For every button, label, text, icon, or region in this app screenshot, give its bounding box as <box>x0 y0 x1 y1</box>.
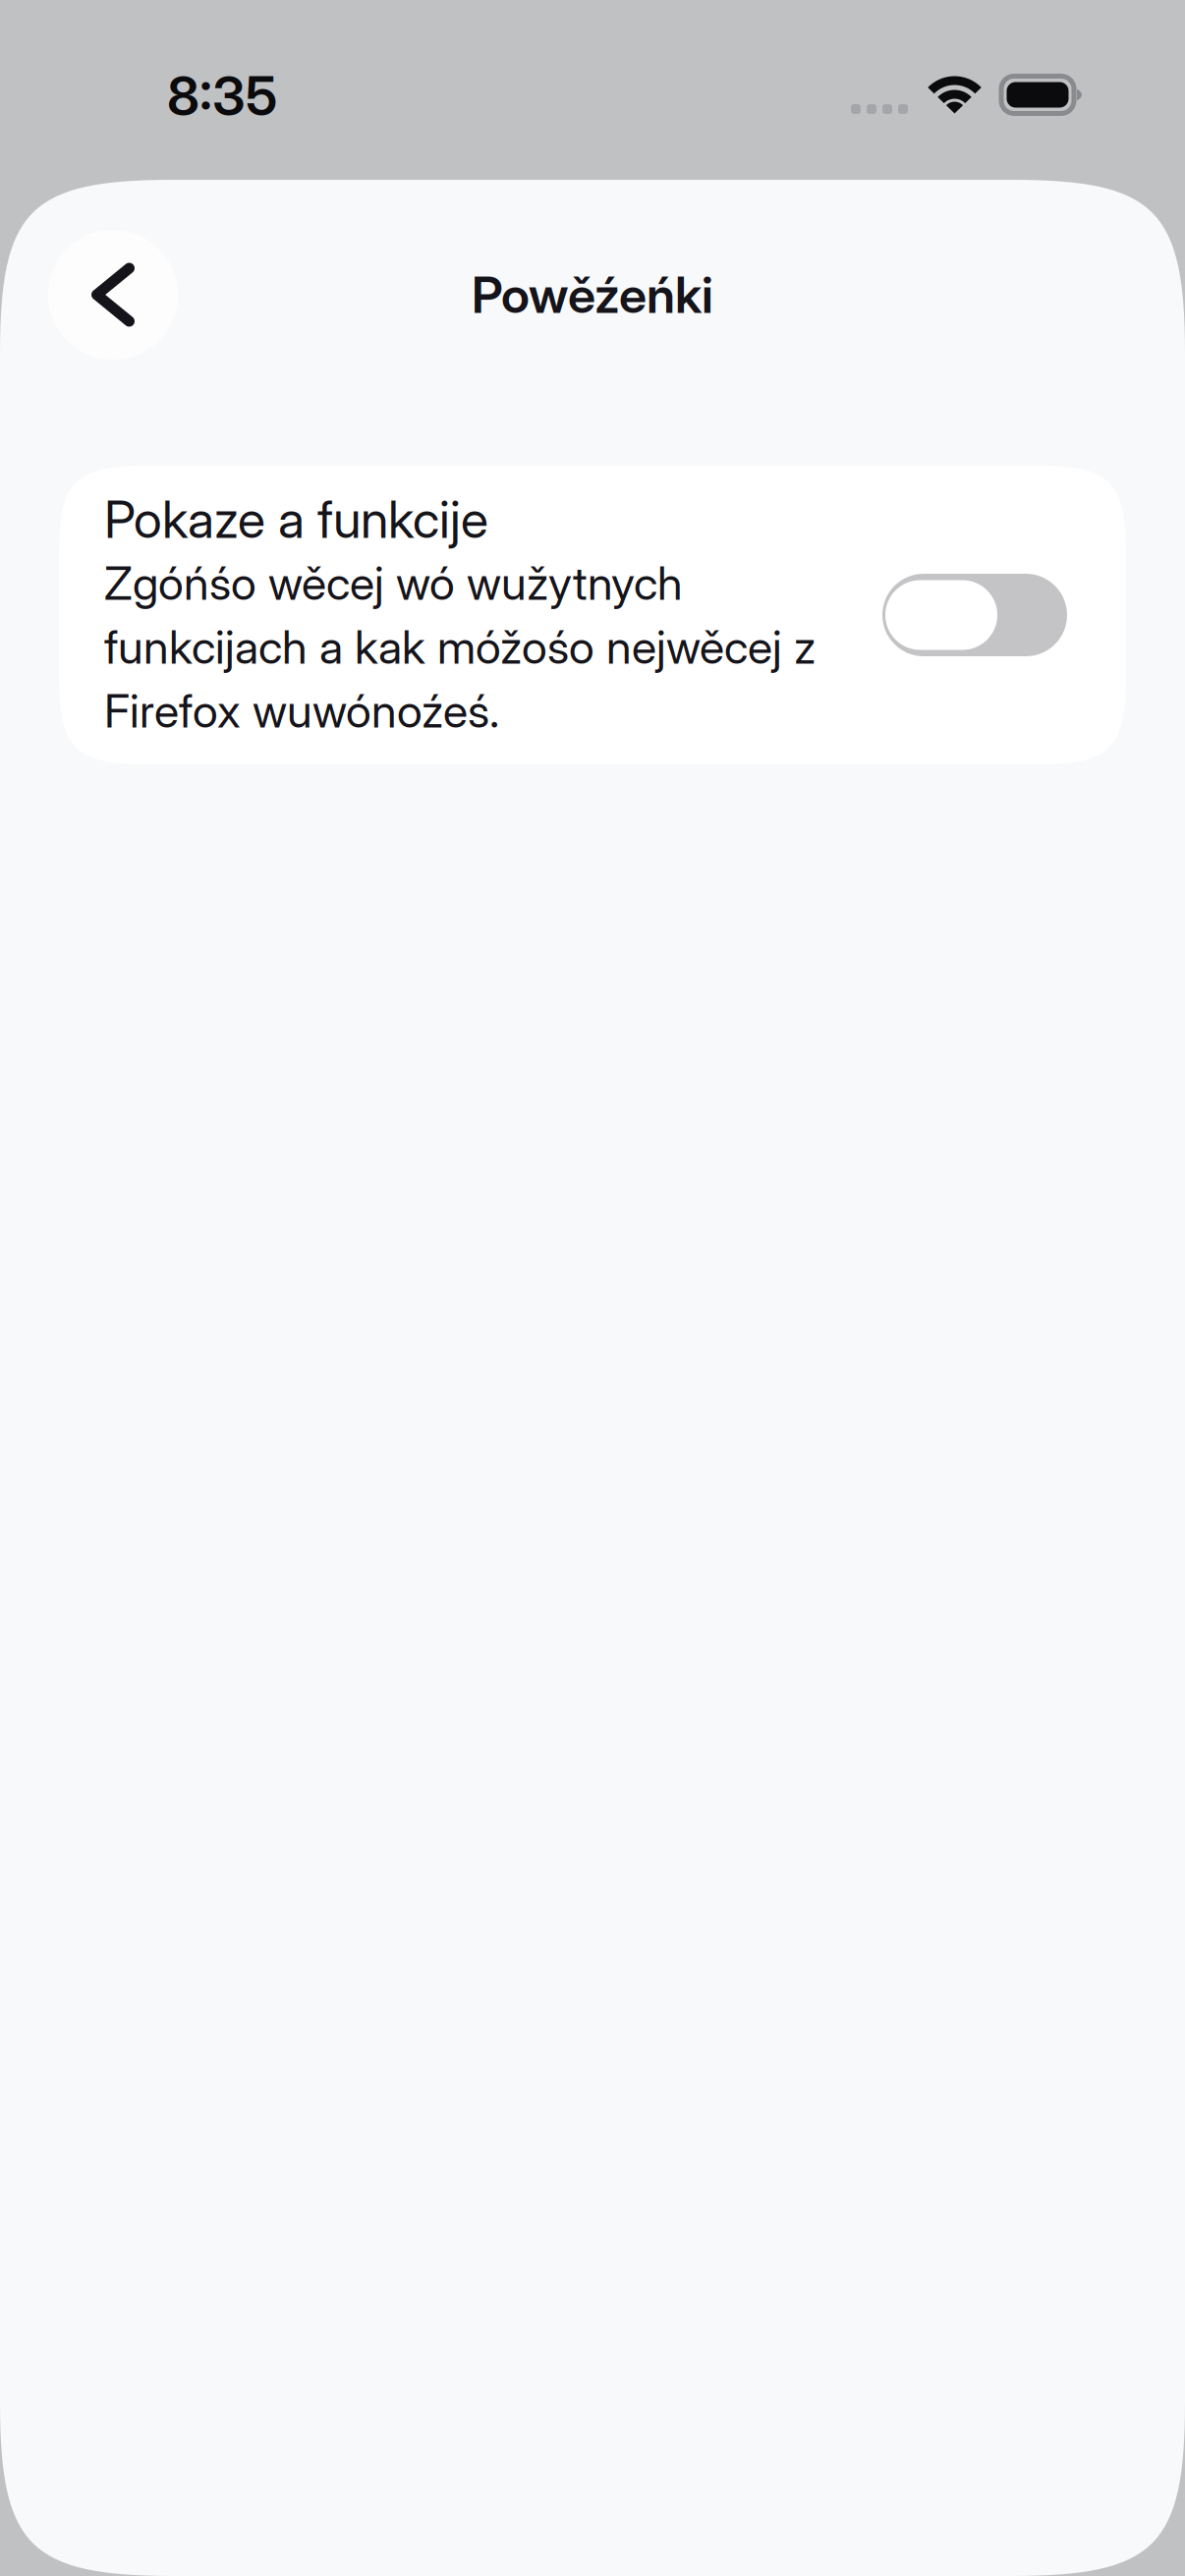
button[interactable]: Back <box>48 230 178 360</box>
button[interactable]: Pokaze a funkcije <box>59 466 1126 764</box>
staticText: funkcijach a kak móžośo nejwěcej z <box>104 619 816 675</box>
staticText: Pokaze a funkcije <box>104 488 488 550</box>
staticText: Firefox wuwónoźeś. <box>104 683 499 739</box>
staticText: Powěźeńki <box>472 265 713 325</box>
staticText: Zgóńśo wěcej wó wužytnych <box>104 555 683 611</box>
staticText: 8:35 <box>167 63 277 128</box>
